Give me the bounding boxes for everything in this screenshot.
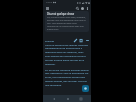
button[interactable]: Copy bbox=[78, 37, 84, 43]
staticText: Dis-moi quelque chose bbox=[47, 12, 75, 15]
button[interactable]: Recents bbox=[77, 95, 84, 102]
staticText: Nous ne saurons pas quelles colonnes d'e… bbox=[45, 43, 89, 66]
button[interactable]: Search bbox=[75, 6, 80, 11]
button[interactable]: More bbox=[84, 37, 90, 43]
button[interactable]: More options bbox=[85, 6, 90, 11]
button[interactable]: Edit bbox=[72, 37, 78, 43]
button[interactable]: Home bbox=[64, 95, 71, 102]
button[interactable]: Account bbox=[80, 6, 85, 11]
staticText: PS. En ce qui concerne les jolies photos… bbox=[45, 68, 89, 87]
button[interactable]: Send bbox=[82, 85, 89, 92]
staticText: Ok, je suis ici pour vous aider, vraimen… bbox=[47, 16, 87, 31]
staticText: 14:13 bbox=[46, 1, 52, 4]
staticText: Français bbox=[45, 39, 55, 42]
button[interactable]: Menu bbox=[45, 6, 50, 11]
button[interactable]: Back bbox=[50, 95, 57, 102]
